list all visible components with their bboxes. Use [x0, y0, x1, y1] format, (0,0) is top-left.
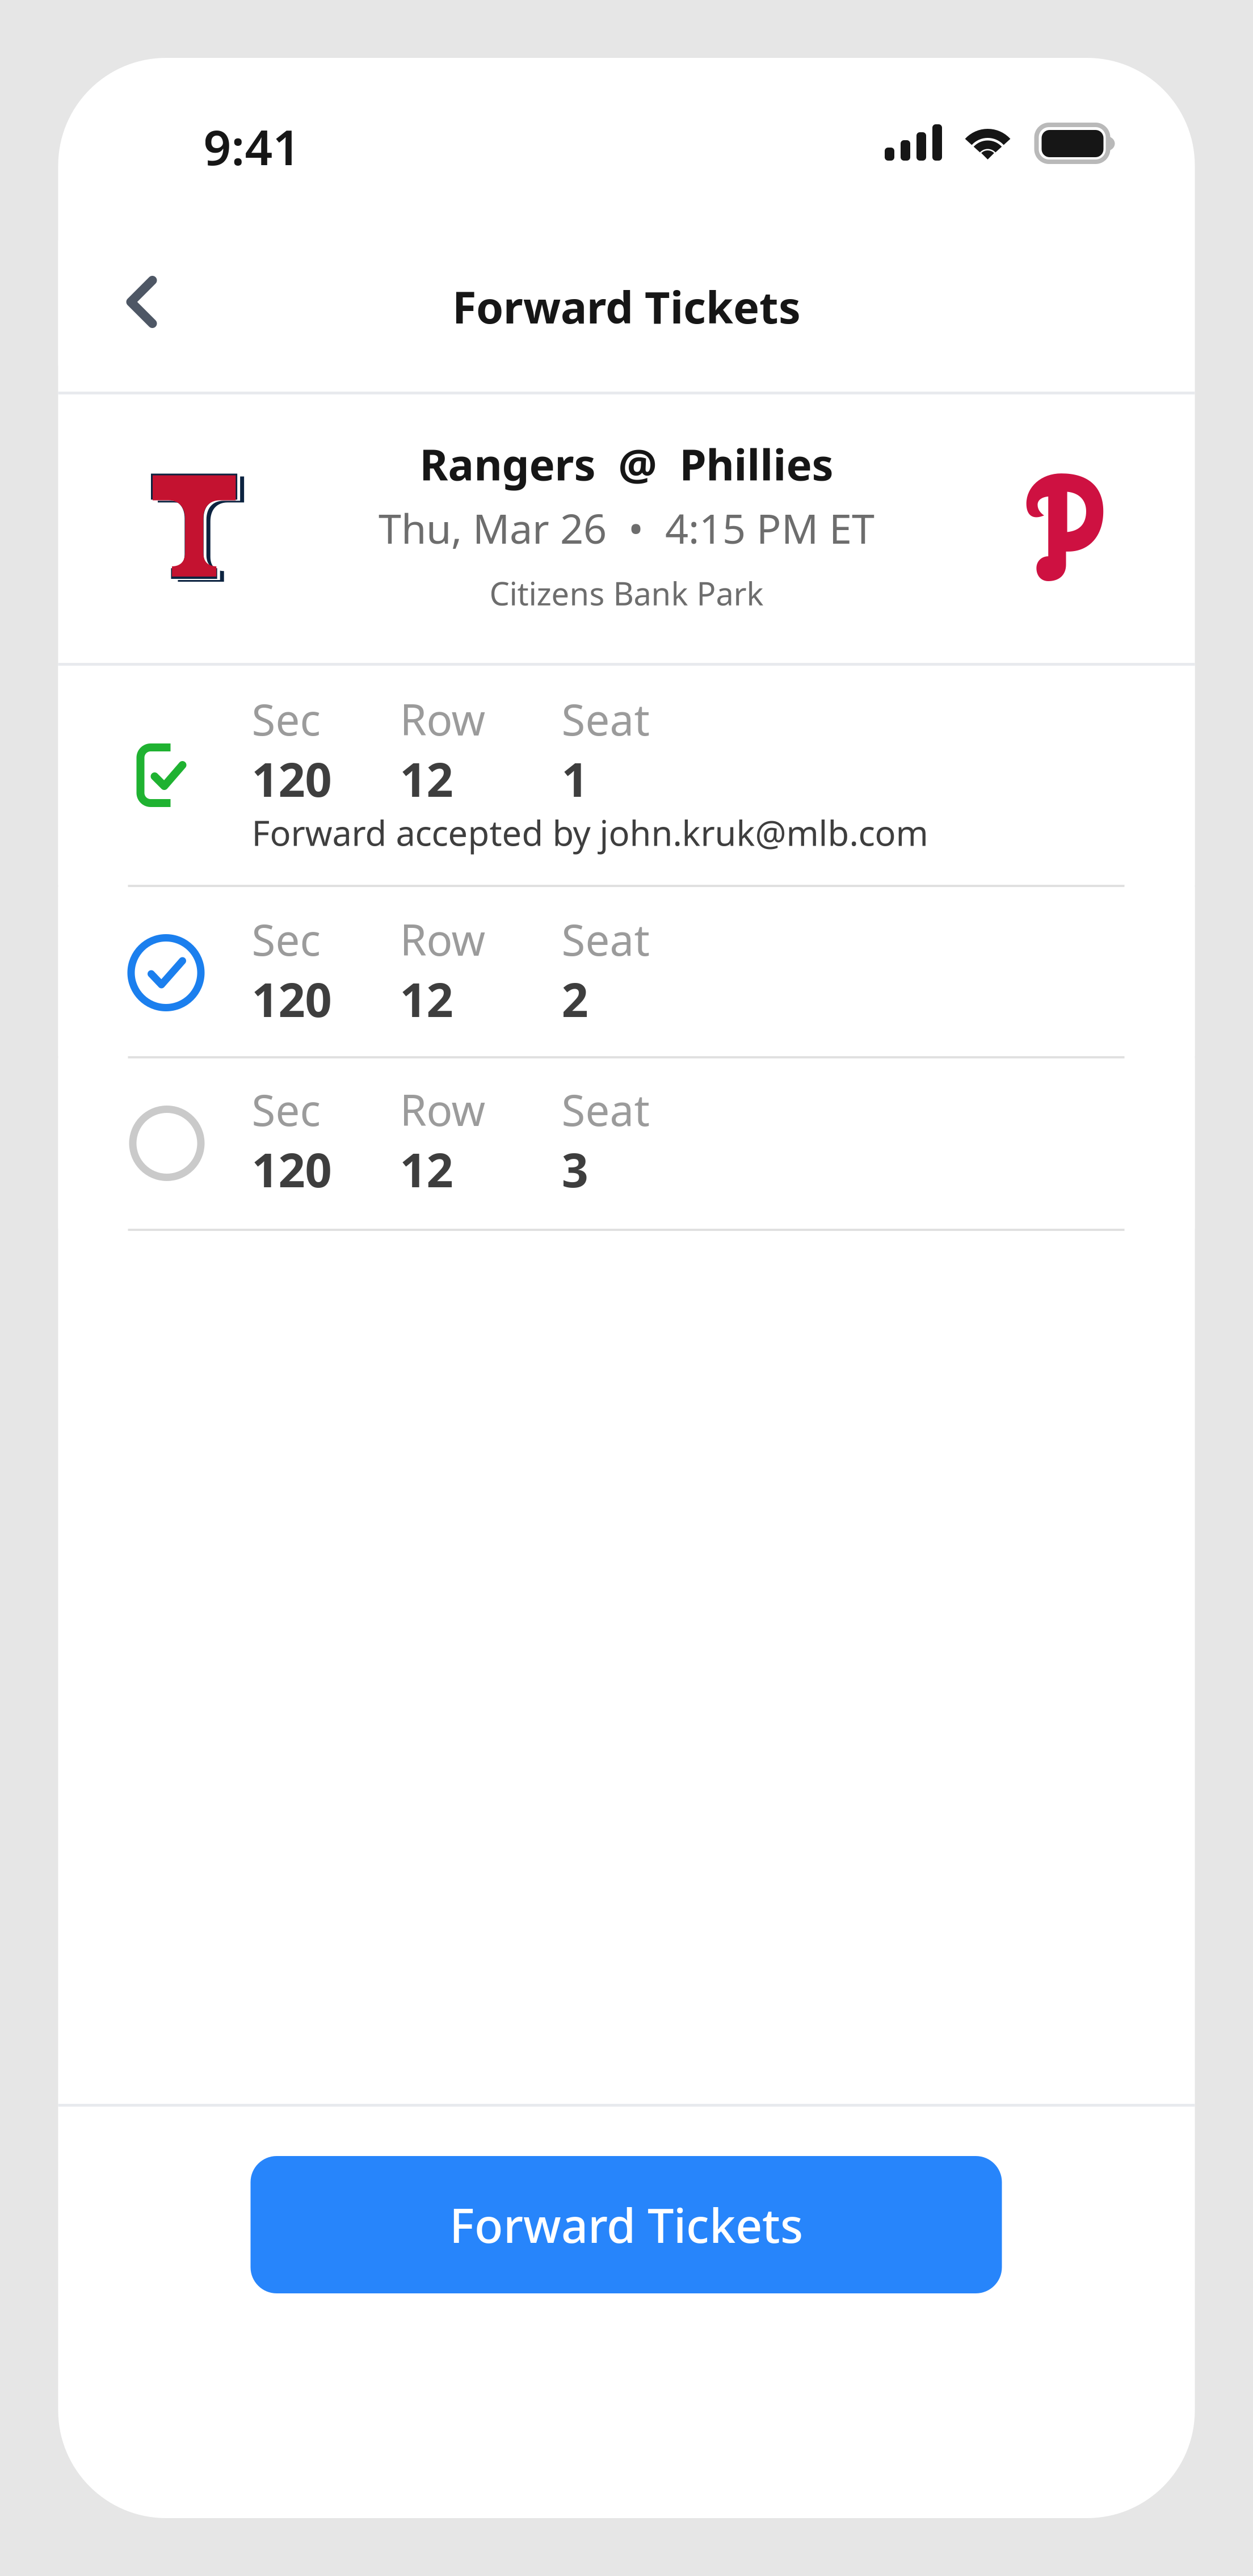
button[interactable]: Forward Tickets: [251, 2156, 1002, 2293]
staticText: Seat: [562, 1081, 649, 1138]
staticText: Forward Tickets: [452, 277, 801, 336]
staticText: 120: [252, 968, 332, 1030]
staticText: 2: [562, 968, 588, 1030]
staticText: 120: [252, 747, 332, 810]
staticText: Sec: [252, 1081, 320, 1138]
staticText: Seat: [562, 910, 649, 968]
staticText: 12: [400, 1138, 453, 1200]
staticText: 12: [400, 747, 453, 810]
button[interactable]: Section 120, Row 12, Seat 2: [58, 887, 1195, 1056]
button[interactable]: Back: [58, 241, 183, 365]
staticText: Rangers @ Phillies: [420, 435, 833, 492]
staticText: 3: [562, 1138, 588, 1200]
staticText: Row: [400, 1081, 485, 1138]
staticText: 120: [252, 1138, 332, 1200]
staticText: 12: [400, 968, 453, 1030]
staticText: Seat: [562, 690, 649, 747]
staticText: 1: [562, 747, 588, 810]
staticText: 9:41: [203, 114, 300, 179]
staticText: Forward accepted by john.kruk@mlb.com: [252, 809, 928, 855]
staticText: Thu, Mar 26 • 4:15 PM ET: [379, 501, 874, 555]
staticText: Sec: [252, 690, 320, 747]
staticText: Row: [400, 690, 485, 747]
staticText: Sec: [252, 910, 320, 968]
staticText: Citizens Bank Park: [489, 572, 764, 614]
staticText: Forward Tickets: [449, 2194, 803, 2256]
button[interactable]: Section 120, Row 12, Seat 3: [58, 1058, 1195, 1229]
staticText: Row: [400, 910, 485, 968]
button[interactable]: Section 120, Row 12, Seat 1: [58, 666, 1195, 885]
